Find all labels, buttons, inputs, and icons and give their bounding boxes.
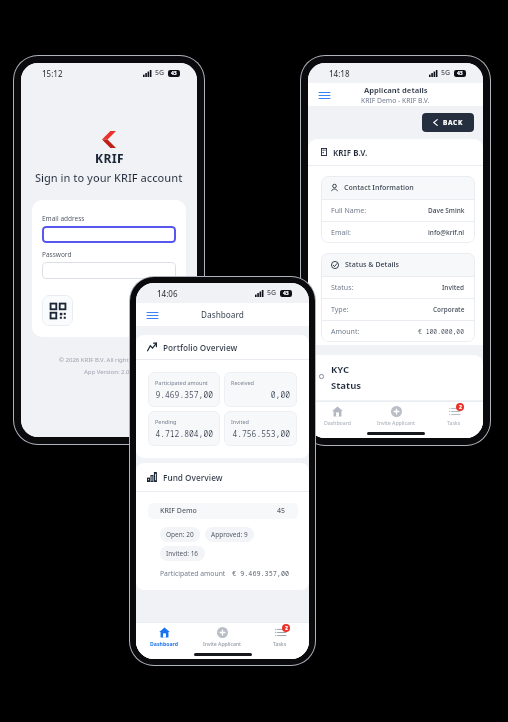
button[interactable]: Open: 20	[166, 530, 194, 539]
staticText: Dave Smink	[428, 206, 465, 215]
button[interactable]: Approved: 9	[211, 530, 248, 539]
staticText: Invite Applicant	[377, 419, 415, 426]
staticText: 4.712.804,00	[155, 428, 213, 439]
staticText: Invited: 16	[166, 549, 199, 558]
staticText: Portfolio Overview	[163, 342, 238, 353]
staticText: 45	[277, 506, 286, 516]
staticText: Dashboard	[201, 309, 244, 320]
staticText: Invite Applicant	[203, 640, 241, 647]
staticText: Corporate	[433, 305, 465, 314]
button[interactable]: BACK	[433, 118, 463, 127]
staticText: Pending	[155, 418, 177, 425]
staticText: Email:	[331, 228, 351, 238]
button[interactable]	[42, 262, 176, 279]
button[interactable]: 2	[251, 627, 309, 647]
staticText: Full Name:	[331, 206, 367, 216]
button[interactable]: KRIF Demo	[160, 503, 286, 519]
staticText: Dashboard	[324, 419, 351, 426]
staticText: 5G	[155, 68, 165, 78]
staticText: Applicant details	[364, 85, 428, 95]
button[interactable]: Status:	[331, 277, 465, 298]
staticText: Participated amount	[160, 569, 226, 578]
button[interactable]: Pending	[155, 418, 213, 439]
button[interactable]	[42, 226, 176, 243]
button[interactable]: Full Name:	[331, 200, 465, 221]
staticText: 5G	[441, 68, 451, 78]
staticText: Received	[231, 379, 254, 386]
staticText: Email address	[42, 214, 85, 223]
staticText: KYC	[331, 363, 350, 376]
staticText: 14:06	[157, 288, 178, 299]
button[interactable]: Dashboard	[136, 627, 193, 647]
staticText: Status	[331, 379, 362, 392]
staticText: € 9.469.357,00	[232, 569, 290, 578]
staticText: KRIF Demo - KRIF B.V.	[361, 96, 430, 105]
staticText: info@krif.nl	[428, 228, 465, 237]
staticText: Status & Details	[345, 260, 399, 270]
button[interactable]: Menu	[144, 307, 160, 323]
button[interactable]: Dashboard	[308, 406, 367, 426]
staticText: Type:	[331, 305, 349, 315]
staticText: Tasks	[273, 640, 287, 647]
staticText: Amount:	[331, 327, 360, 337]
staticText: 4.756.553,00	[231, 428, 290, 439]
staticText: Status:	[331, 283, 354, 293]
staticText: € 100.000,00	[418, 327, 465, 336]
button[interactable]: Invite Applicant	[193, 627, 251, 647]
staticText: Invited	[231, 418, 249, 425]
staticText: Password	[42, 250, 72, 259]
staticText: 14:18	[329, 68, 350, 79]
button[interactable]: Invited: 16	[166, 549, 199, 558]
staticText: Participated amount	[155, 379, 208, 386]
button[interactable]: Invited	[231, 418, 290, 439]
staticText: 15:12	[42, 68, 63, 79]
button[interactable]: Scan QR code	[42, 295, 73, 326]
staticText: Tasks	[447, 419, 461, 426]
staticText: 2	[459, 404, 462, 411]
staticText: Contact Information	[344, 183, 414, 193]
button[interactable]: Menu	[316, 87, 332, 103]
staticText: 43	[457, 70, 463, 77]
staticText: App Version: 2.0.1	[84, 368, 135, 376]
staticText: 9.469.357,00	[155, 389, 213, 400]
staticText: KRIF Demo	[160, 506, 197, 516]
staticText: Invited	[442, 283, 465, 292]
staticText: BACK	[443, 118, 463, 127]
button[interactable]: Participated amount	[155, 379, 213, 400]
staticText: KRIF B.V.	[333, 147, 368, 158]
staticText: Dashboard	[150, 640, 179, 647]
button[interactable]: Invite Applicant	[367, 406, 425, 426]
staticText: Fund Overview	[163, 472, 223, 483]
staticText: Sign in to your KRIF account	[35, 170, 183, 185]
button[interactable]: 2	[425, 406, 483, 426]
button[interactable]: Email:	[331, 222, 465, 243]
button[interactable]: Amount:	[331, 321, 465, 342]
staticText: Open: 20	[166, 530, 194, 539]
staticText: © 2026 KRIF B.V. All rights reserved.	[59, 356, 160, 364]
staticText: 43	[283, 290, 289, 297]
staticText: 2	[285, 625, 288, 632]
staticText: 0,00	[231, 389, 290, 400]
button[interactable]: Received	[231, 379, 290, 400]
staticText: 5G	[267, 288, 277, 298]
staticText: KRIF	[95, 150, 124, 166]
button[interactable]: Type:	[331, 299, 465, 320]
staticText: Approved: 9	[211, 530, 248, 539]
staticText: 43	[171, 70, 177, 77]
